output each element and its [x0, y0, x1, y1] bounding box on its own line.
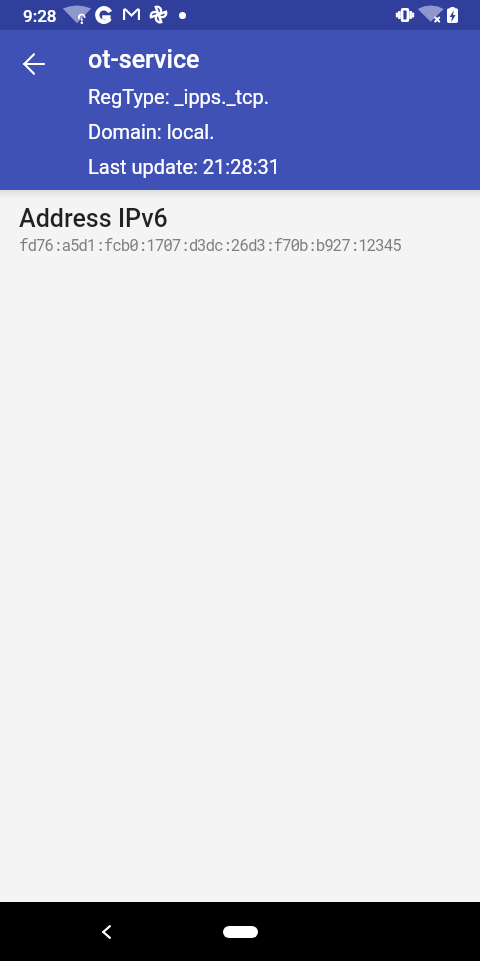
staticText: RegType: _ipps._tcp.: [88, 85, 269, 108]
button[interactable]: Navigate up: [10, 40, 58, 88]
button[interactable]: Back: [82, 908, 130, 956]
staticText: Last update: 21:28:31: [88, 155, 280, 178]
staticText: fd76:a5d1:fcb0:1707:d3dc:26d3:f70b:b927:…: [19, 234, 401, 255]
staticText: Domain: local.: [88, 120, 215, 143]
button[interactable]: Home: [223, 926, 258, 938]
staticText: ot-service: [88, 45, 200, 74]
staticText: 9:28: [23, 6, 57, 26]
staticText: Address IPv6: [19, 204, 168, 233]
